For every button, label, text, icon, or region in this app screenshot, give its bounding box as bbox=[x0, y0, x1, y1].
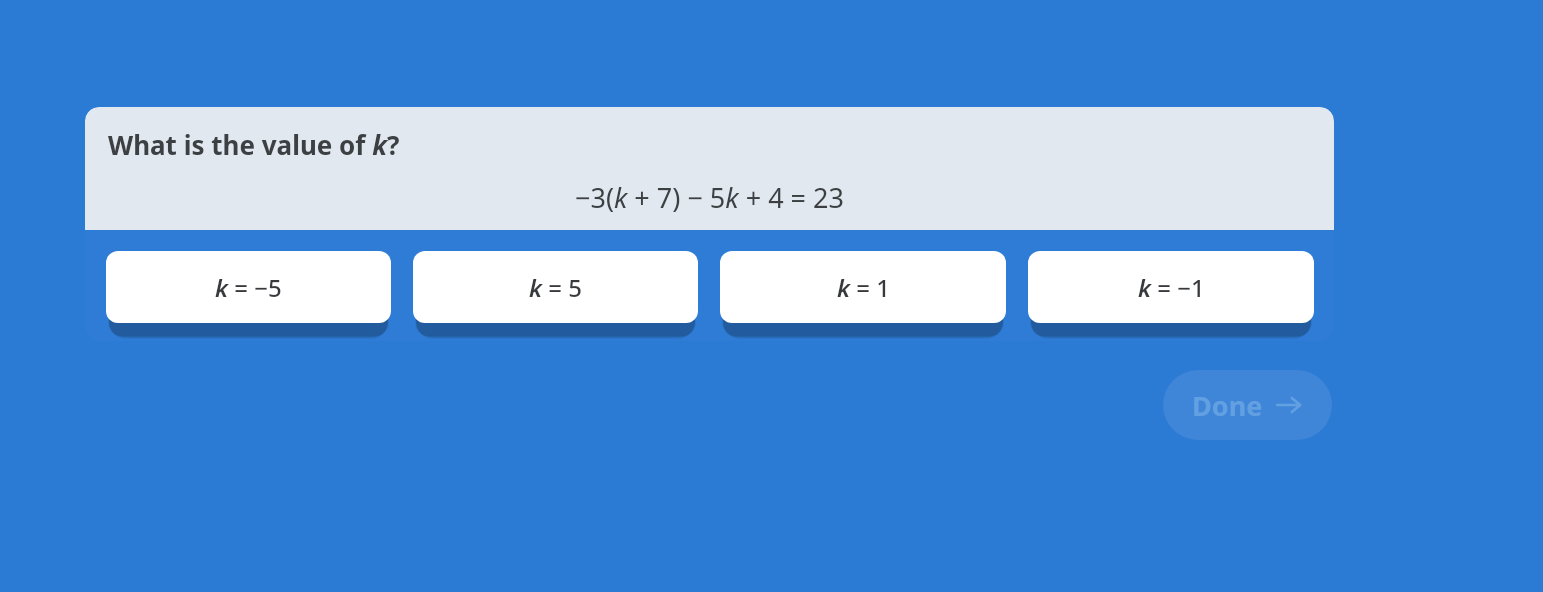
staticText: Done bbox=[1192, 387, 1263, 424]
staticText: What is the value of k? bbox=[108, 127, 400, 162]
staticText: k = 5 bbox=[529, 271, 582, 304]
other: Done, go to next bbox=[1275, 391, 1303, 419]
staticText: −3(k + 7) − 5k + 4 = 23 bbox=[575, 179, 844, 216]
staticText: k = −5 bbox=[215, 271, 282, 304]
staticText: k = 1 bbox=[837, 271, 890, 304]
button[interactable]: k = 5 bbox=[413, 251, 698, 323]
button[interactable]: Done bbox=[1163, 370, 1332, 440]
button[interactable]: k = −5 bbox=[106, 251, 391, 323]
button[interactable]: k = 1 bbox=[720, 251, 1006, 323]
button[interactable]: k = −1 bbox=[1028, 251, 1314, 323]
staticText: k = −1 bbox=[1138, 271, 1205, 304]
